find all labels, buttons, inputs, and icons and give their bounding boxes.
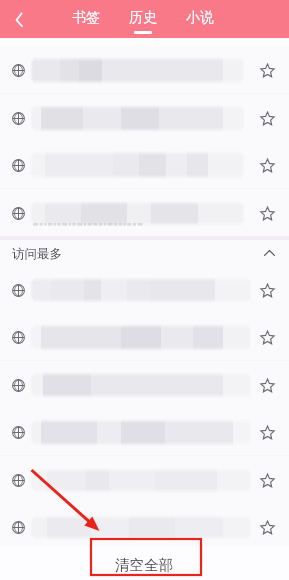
button[interactable]: Bookmark: [0, 94, 289, 141]
button[interactable]: Bookmark: [0, 456, 289, 503]
button[interactable]: 历史: [115, 0, 171, 38]
button[interactable]: Bookmark: [256, 107, 278, 129]
button[interactable]: Bookmark: [0, 189, 289, 236]
staticText: 历史: [129, 9, 157, 27]
button[interactable]: Bookmark: [0, 266, 289, 313]
button[interactable]: Bookmark: [256, 469, 278, 491]
button[interactable]: Bookmark: [256, 202, 278, 224]
button[interactable]: Bookmark: [0, 313, 289, 360]
button[interactable]: Bookmark: [256, 421, 278, 443]
staticText: 小说: [186, 9, 214, 27]
staticText: 清空全部: [115, 556, 173, 574]
button[interactable]: Bookmark: [256, 516, 278, 538]
button[interactable]: Bookmark: [256, 154, 278, 176]
button[interactable]: 访问最多: [0, 236, 289, 266]
button[interactable]: Bookmark: [0, 141, 289, 188]
button[interactable]: Bookmark: [256, 326, 278, 348]
button[interactable]: Back: [0, 0, 38, 38]
button[interactable]: Bookmark: [256, 279, 278, 301]
button[interactable]: Bookmark: [0, 503, 289, 550]
button[interactable]: Bookmark: [256, 374, 278, 396]
button[interactable]: Bookmark: [256, 59, 278, 81]
button[interactable]: 小说: [172, 0, 228, 38]
button[interactable]: Bookmark: [0, 361, 289, 408]
button[interactable]: 书签: [58, 0, 114, 38]
staticText: 书签: [72, 9, 100, 27]
staticText: 访问最多: [12, 246, 62, 262]
button[interactable]: Bookmark: [0, 46, 289, 93]
button[interactable]: 清空全部: [0, 547, 289, 580]
button[interactable]: Bookmark: [0, 408, 289, 455]
